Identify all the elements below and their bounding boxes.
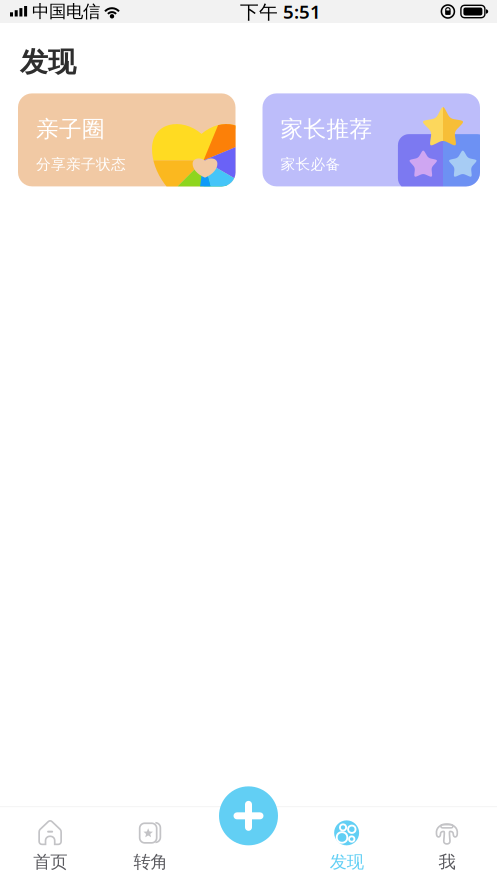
button[interactable]: 家长推荐	[262, 93, 480, 186]
staticText: 首页	[33, 851, 67, 873]
button[interactable]: 我	[397, 807, 497, 883]
staticText: 分享亲子状态	[36, 155, 126, 173]
button[interactable]: 首页	[0, 807, 100, 883]
staticText: 家长必备	[280, 155, 340, 173]
staticText: 中国电信	[32, 1, 100, 22]
button[interactable]: 发现	[296, 807, 397, 883]
staticText: 发现	[20, 45, 76, 79]
staticText: 下午 5:51	[240, 0, 321, 24]
staticText: 转角	[133, 851, 167, 873]
staticText: 亲子圈	[36, 115, 105, 143]
button[interactable]: Add	[219, 786, 278, 845]
staticText: 我	[438, 851, 455, 873]
button[interactable]: 转角	[100, 807, 200, 883]
button[interactable]: 亲子圈	[18, 93, 235, 186]
staticText: 家长推荐	[280, 115, 372, 143]
staticText: 发现	[330, 851, 364, 873]
